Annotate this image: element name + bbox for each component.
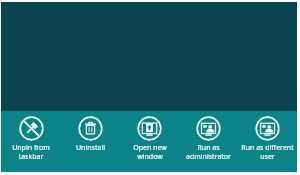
staticText: Run as administrator xyxy=(186,143,231,161)
staticText: Run as different user xyxy=(241,143,294,161)
button[interactable]: Unpin from taskbar xyxy=(1,111,61,172)
button[interactable]: Uninstall xyxy=(61,111,120,172)
staticText: Uninstall xyxy=(76,143,105,153)
button[interactable]: Run as administrator xyxy=(179,111,238,172)
button[interactable]: Open new window xyxy=(120,111,179,172)
button[interactable]: Run as different user xyxy=(238,111,297,172)
staticText: Unpin from taskbar xyxy=(12,143,50,161)
staticText: Open new window xyxy=(133,143,167,161)
